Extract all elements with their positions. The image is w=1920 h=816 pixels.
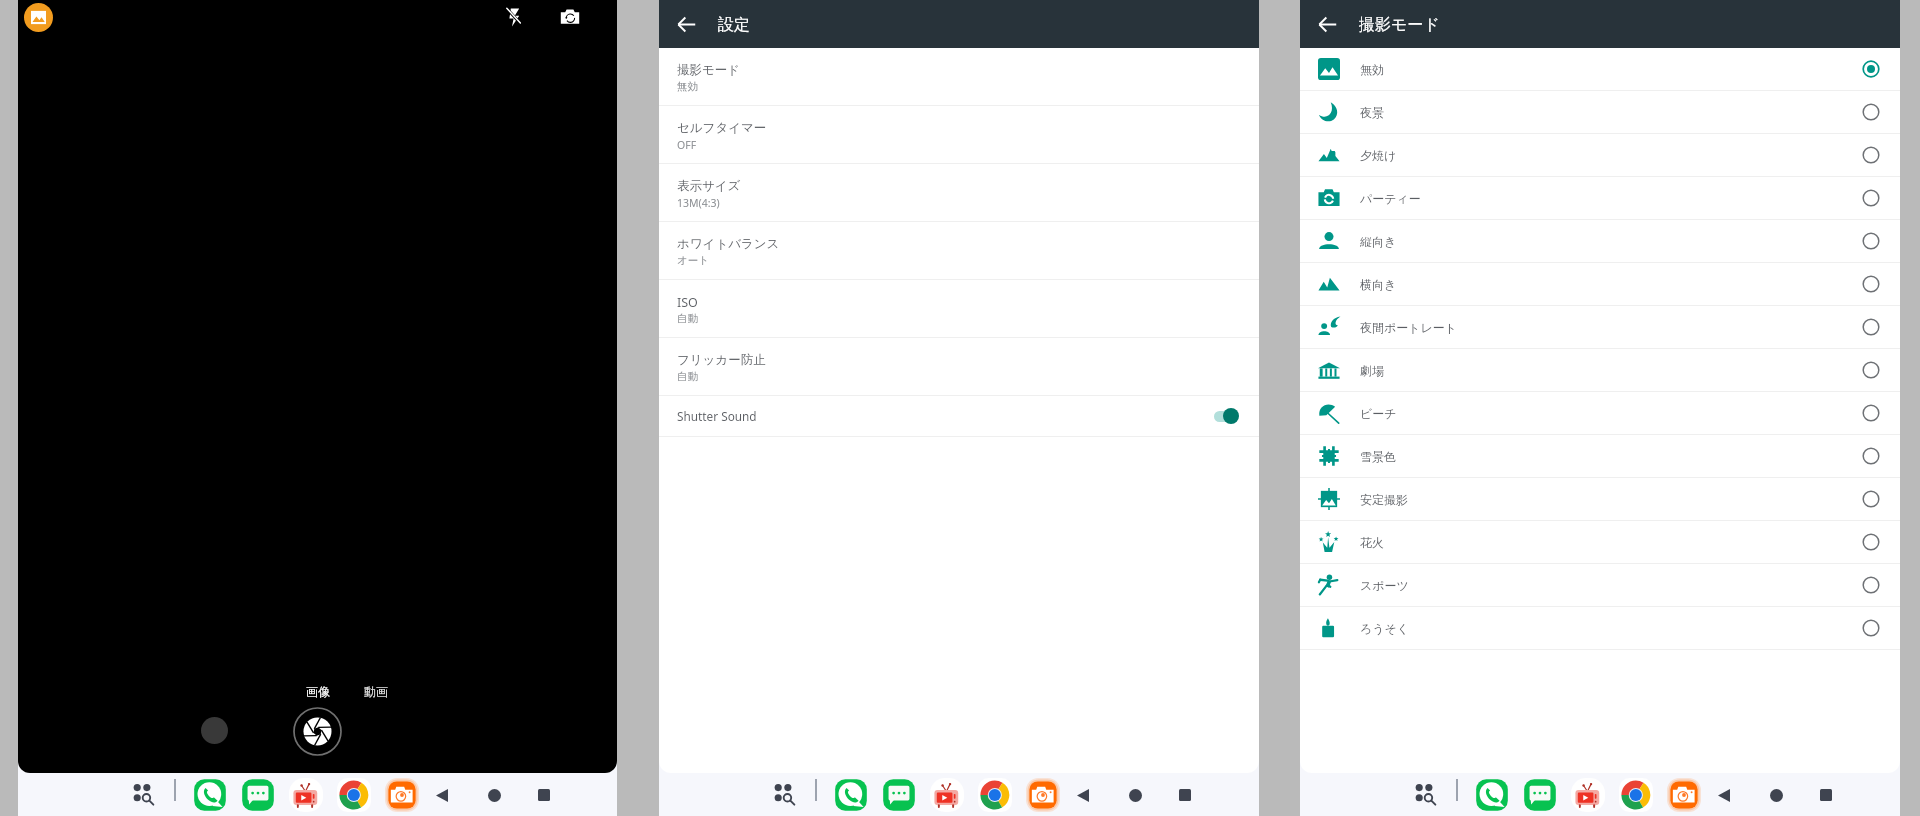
button[interactable]: 夜間ポートレート [1300,306,1900,349]
button[interactable]: Home [1758,777,1794,813]
button[interactable]: Camera [1025,777,1061,813]
button[interactable]: 画像 [300,682,336,700]
button[interactable]: Phone [833,777,869,813]
staticText: 花火 [1360,535,1384,550]
button[interactable]: セルフタイマー [659,106,1259,164]
button[interactable]: 表示サイズ [659,164,1259,222]
button[interactable]: Messages [881,777,917,813]
button[interactable]: Messages [1522,777,1558,813]
button[interactable]: Back [666,4,706,44]
button[interactable]: 劇場 [1300,349,1900,392]
staticText: フリッカー防止 [677,352,766,368]
staticText: セルフタイマー [677,120,767,136]
button[interactable]: パーティー [1300,177,1900,220]
button[interactable]: Camera [384,777,420,813]
staticText: 夜景 [1360,105,1384,120]
button[interactable]: Back [1065,777,1101,813]
button[interactable]: Recents [1167,777,1203,813]
staticText: 画像 [306,684,330,699]
staticText: 撮影モード [1359,15,1440,35]
button[interactable]: Switch camera [555,2,585,32]
button[interactable]: 雪景色 [1300,435,1900,478]
staticText: 13M(4:3) [677,196,720,210]
staticText: 設定 [718,15,750,35]
staticText: 撮影モード [677,62,741,78]
button[interactable]: 無効 [1300,48,1900,91]
button[interactable]: Messages [240,777,276,813]
button[interactable]: ビーチ [1300,392,1900,435]
button[interactable]: Recents [1808,777,1844,813]
button[interactable]: Home [1117,777,1153,813]
button[interactable]: ISO [659,280,1259,338]
button[interactable]: Chrome [977,777,1013,813]
staticText: 夜間ポートレート [1360,320,1458,335]
button[interactable]: 花火 [1300,521,1900,564]
staticText: 動画 [364,684,388,699]
button[interactable]: Gallery [23,2,53,32]
button[interactable]: TV [1570,777,1606,813]
button[interactable]: Shutter [291,705,343,757]
button[interactable]: 縦向き [1300,220,1900,263]
button[interactable]: ホワイトバランス [659,222,1259,280]
button[interactable]: TV [288,777,324,813]
staticText: 雪景色 [1360,449,1396,464]
button[interactable]: Phone [192,777,228,813]
staticText: 自動 [677,370,698,383]
button[interactable]: 横向き [1300,263,1900,306]
button[interactable]: Recents [526,777,562,813]
button[interactable]: 撮影モード [659,48,1259,106]
staticText: 安定撮影 [1360,492,1408,507]
staticText: ろうそく [1360,621,1410,636]
button[interactable]: App drawer [1407,775,1443,811]
staticText: OFF [677,138,697,152]
staticText: 自動 [677,312,698,325]
staticText: オート [677,254,709,267]
button[interactable]: Camera [1666,777,1702,813]
staticText: 横向き [1360,277,1397,292]
staticText: ISO [677,294,698,311]
button[interactable]: Chrome [1618,777,1654,813]
button[interactable]: App drawer [766,775,802,811]
button[interactable]: Flash off [499,2,529,32]
button[interactable]: Last photo [198,714,230,746]
staticText: 無効 [677,80,698,93]
button[interactable]: 動画 [358,682,394,700]
button[interactable]: 夜景 [1300,91,1900,134]
button[interactable]: Back [1706,777,1742,813]
button[interactable]: 夕焼け [1300,134,1900,177]
button[interactable]: App drawer [125,775,161,811]
button[interactable]: TV [929,777,965,813]
button[interactable]: フリッカー防止 [659,338,1259,396]
button[interactable]: ろうそく [1300,607,1900,650]
staticText: 夕焼け [1360,148,1397,163]
staticText: スポーツ [1360,578,1409,593]
button[interactable]: スポーツ [1300,564,1900,607]
staticText: Shutter Sound [677,408,757,424]
staticText: ビーチ [1360,406,1397,421]
button[interactable]: Back [424,777,460,813]
button[interactable]: Phone [1474,777,1510,813]
button[interactable]: Shutter Sound [659,396,1259,437]
button[interactable]: 安定撮影 [1300,478,1900,521]
staticText: 表示サイズ [677,178,741,194]
staticText: ホワイトバランス [677,236,780,252]
staticText: 劇場 [1360,363,1384,378]
button[interactable]: Home [476,777,512,813]
button[interactable]: Chrome [336,777,372,813]
button[interactable]: Back [1307,4,1347,44]
staticText: 無効 [1360,62,1384,77]
staticText: パーティー [1360,191,1421,206]
staticText: 縦向き [1360,234,1397,249]
